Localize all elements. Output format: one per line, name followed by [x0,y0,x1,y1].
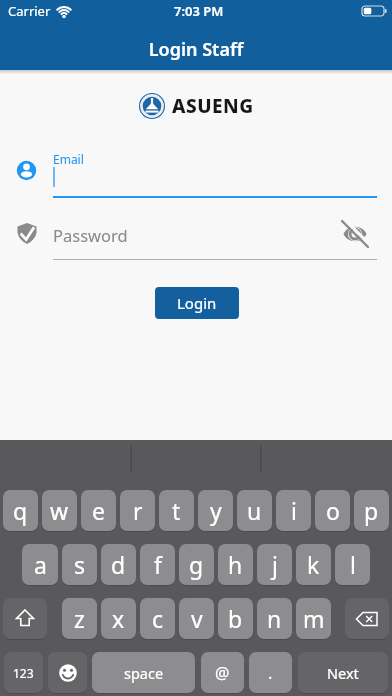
staticText: q [13,495,28,526]
button[interactable]: p [354,490,389,531]
button[interactable]: i [276,490,311,531]
staticText: Login [177,293,217,313]
staticText: s [74,549,86,580]
staticText: u [247,495,262,526]
staticText: y [210,495,222,526]
staticText: n [267,603,282,634]
staticText: o [326,495,340,526]
button[interactable]: o [315,490,350,531]
button[interactable] [46,146,377,198]
staticText: space [124,663,164,683]
button[interactable]: k [296,544,331,585]
staticText: 7:03 PM [174,2,224,20]
button[interactable] [345,598,389,639]
button[interactable]: a [22,544,58,585]
staticText: a [34,549,47,580]
button[interactable]: y [198,490,233,531]
staticText: ASUENG [172,93,254,119]
staticText: h [228,549,243,580]
staticText: . [268,662,273,684]
button[interactable] [48,652,87,693]
staticText: Carrier [8,2,51,20]
staticText: b [228,603,243,634]
button[interactable]: j [257,544,292,585]
staticText: i [291,495,297,526]
button[interactable]: w [42,490,77,531]
staticText: w [50,495,69,526]
button[interactable]: e [81,490,116,531]
staticText: e [92,495,105,526]
staticText: z [74,603,85,634]
staticText: l [350,549,356,580]
button[interactable]: n [257,598,292,639]
button[interactable]: r [120,490,155,531]
staticText: g [189,549,204,580]
button[interactable]: c [140,598,175,639]
button[interactable]: 123 [4,652,43,693]
staticText: x [112,603,125,634]
staticText: d [111,549,126,580]
button[interactable]: Login [155,287,239,319]
button[interactable]: h [218,544,253,585]
button[interactable]: d [101,544,136,585]
button[interactable]: g [179,544,214,585]
button[interactable]: . [249,652,292,693]
button[interactable]: b [218,598,253,639]
button[interactable]: space [92,652,195,693]
staticText: Next [327,663,359,683]
staticText: j [272,549,278,580]
staticText: r [133,495,143,526]
staticText: t [172,495,181,526]
staticText: Email [53,151,84,167]
staticText: Password [53,224,128,246]
button[interactable]: q [3,490,38,531]
staticText: k [307,549,320,580]
button[interactable] [46,212,377,260]
button[interactable]: m [296,598,331,639]
button[interactable] [3,598,47,639]
staticText: 123 [13,665,34,681]
button[interactable]: x [101,598,136,639]
staticText: @ [215,662,230,684]
button[interactable]: Next [298,652,388,693]
staticText: v [191,603,203,634]
staticText: f [154,549,162,580]
button[interactable]: f [140,544,175,585]
button[interactable]: s [62,544,97,585]
button[interactable]: l [335,544,370,585]
button[interactable]: t [159,490,194,531]
button[interactable]: z [62,598,97,639]
button[interactable]: u [237,490,272,531]
staticText: Login Staff [0,37,392,62]
staticText: m [303,603,325,634]
button[interactable]: v [179,598,214,639]
staticText: p [364,495,379,526]
button[interactable]: @ [201,652,244,693]
staticText: c [152,603,164,634]
